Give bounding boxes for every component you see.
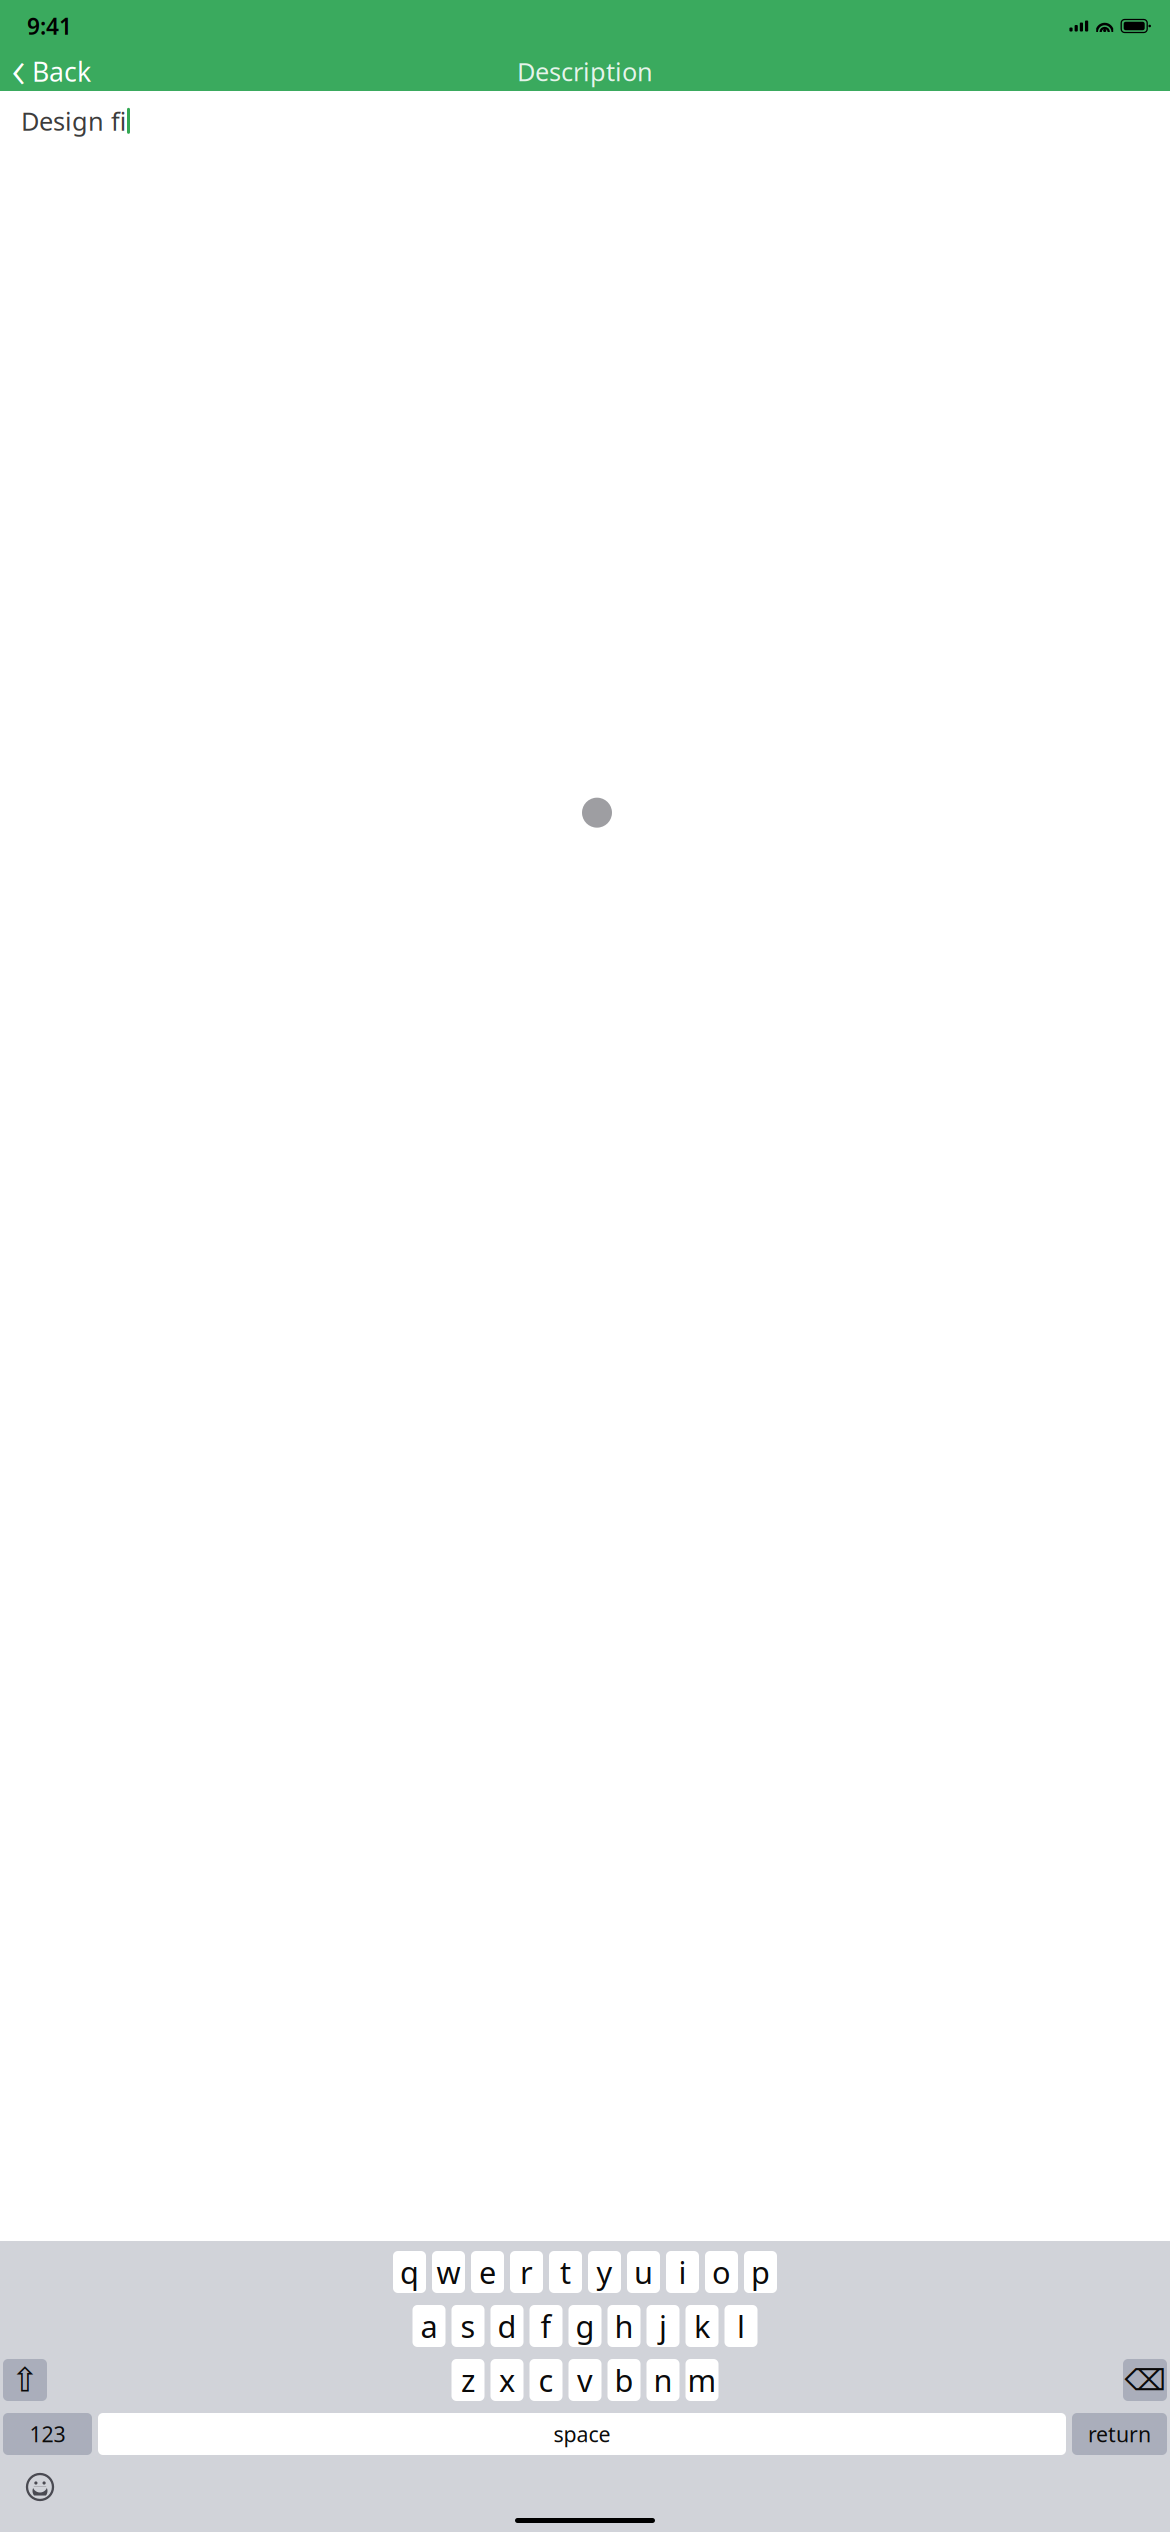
staticText: l bbox=[737, 2306, 745, 2346]
button[interactable]: space bbox=[98, 2413, 1066, 2455]
button[interactable]: j bbox=[646, 2305, 679, 2347]
button[interactable]: d bbox=[490, 2305, 523, 2347]
button[interactable]: w bbox=[432, 2251, 465, 2293]
button[interactable]: r bbox=[510, 2251, 543, 2293]
button[interactable]: q bbox=[393, 2251, 426, 2293]
staticText: z bbox=[461, 2360, 475, 2400]
button[interactable]: i bbox=[666, 2251, 699, 2293]
staticText: x bbox=[499, 2360, 515, 2400]
button[interactable]: a bbox=[412, 2305, 445, 2347]
button[interactable]: l bbox=[724, 2305, 757, 2347]
staticText: y bbox=[596, 2252, 612, 2292]
staticText: 123 bbox=[29, 2420, 65, 2448]
staticText: o bbox=[712, 2252, 731, 2292]
staticText: c bbox=[538, 2360, 553, 2400]
staticText: Description bbox=[517, 55, 653, 88]
staticText: f bbox=[540, 2306, 551, 2346]
button[interactable]: o bbox=[705, 2251, 738, 2293]
staticText: p bbox=[751, 2252, 770, 2292]
button[interactable]: f bbox=[529, 2305, 562, 2347]
button[interactable]: g bbox=[568, 2305, 601, 2347]
staticText: s bbox=[460, 2306, 475, 2346]
staticText: n bbox=[653, 2360, 672, 2400]
button[interactable]: y bbox=[588, 2251, 621, 2293]
staticText: h bbox=[614, 2306, 633, 2346]
button[interactable]: u bbox=[627, 2251, 660, 2293]
staticText: q bbox=[400, 2252, 419, 2292]
staticText: space bbox=[553, 2420, 610, 2448]
staticText: a bbox=[420, 2306, 437, 2346]
button[interactable]: Emoji keyboard bbox=[17, 2464, 63, 2510]
button[interactable]: n bbox=[646, 2359, 679, 2401]
staticText: u bbox=[634, 2252, 653, 2292]
staticText: w bbox=[436, 2252, 460, 2292]
button[interactable]: p bbox=[744, 2251, 777, 2293]
staticText: ⇧ bbox=[11, 2361, 39, 2399]
staticText: g bbox=[575, 2306, 594, 2346]
staticText: return bbox=[1088, 2420, 1151, 2448]
button[interactable]: k bbox=[685, 2305, 718, 2347]
button[interactable]: return bbox=[1072, 2413, 1167, 2455]
button[interactable]: 123 bbox=[3, 2413, 92, 2455]
staticText: Back bbox=[32, 54, 91, 89]
button[interactable]: m bbox=[685, 2359, 718, 2401]
button[interactable]: t bbox=[549, 2251, 582, 2293]
button[interactable]: ‹ bbox=[0, 48, 103, 95]
staticText: Design fi bbox=[21, 104, 126, 138]
staticText: b bbox=[614, 2360, 633, 2400]
staticText: ⌫ bbox=[1124, 2363, 1165, 2397]
staticText: t bbox=[560, 2252, 571, 2292]
button[interactable]: h bbox=[607, 2305, 640, 2347]
staticText: i bbox=[678, 2252, 686, 2292]
button[interactable]: b bbox=[607, 2359, 640, 2401]
staticText: v bbox=[577, 2360, 593, 2400]
button[interactable]: z bbox=[451, 2359, 484, 2401]
staticText: 9:41 bbox=[27, 11, 72, 41]
staticText: e bbox=[479, 2252, 496, 2292]
button[interactable]: s bbox=[451, 2305, 484, 2347]
button[interactable]: x bbox=[490, 2359, 523, 2401]
staticText: ‹ bbox=[11, 32, 25, 103]
button[interactable]: Shift bbox=[3, 2359, 47, 2401]
button[interactable]: e bbox=[471, 2251, 504, 2293]
staticText: j bbox=[659, 2306, 667, 2346]
staticText: m bbox=[687, 2360, 716, 2400]
staticText: r bbox=[520, 2252, 533, 2292]
staticText: d bbox=[497, 2306, 516, 2346]
button[interactable]: v bbox=[568, 2359, 601, 2401]
button[interactable]: c bbox=[529, 2359, 562, 2401]
button[interactable]: Delete bbox=[1123, 2359, 1167, 2401]
staticText: k bbox=[694, 2306, 710, 2346]
